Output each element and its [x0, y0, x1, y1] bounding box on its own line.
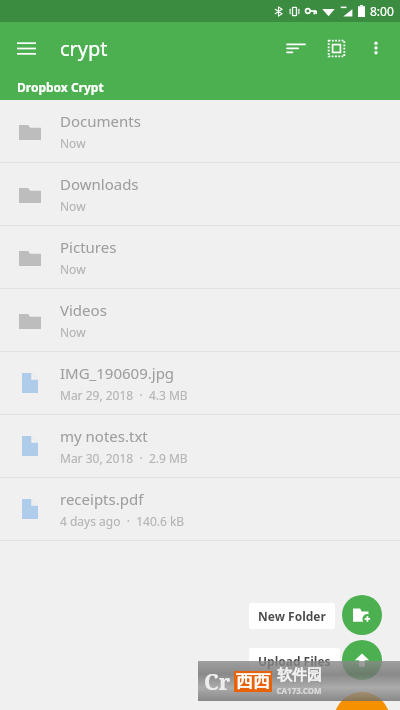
staticText: Now [60, 198, 86, 214]
button[interactable]: New folder [342, 595, 382, 635]
button[interactable]: New Folder [249, 603, 335, 629]
staticText: IMG_190609.jpg [60, 363, 175, 383]
button[interactable]: Pictures [0, 226, 400, 288]
staticText: Cr [204, 666, 231, 696]
staticText: Downloads [60, 174, 139, 194]
staticText: 4 days ago · 140.6 kB [60, 513, 185, 529]
staticText: Documents [60, 111, 141, 131]
staticText: Now [60, 261, 86, 277]
button[interactable]: Downloads [0, 163, 400, 225]
staticText: Now [60, 135, 86, 151]
button[interactable]: my notes.txt [0, 415, 400, 477]
staticText: my notes.txt [60, 426, 148, 446]
button[interactable]: IMG_190609.jpg [0, 352, 400, 414]
button[interactable]: More options [356, 28, 396, 68]
button[interactable]: Open navigation drawer [8, 30, 44, 66]
staticText: Now [60, 324, 86, 340]
staticText: Pictures [60, 237, 117, 257]
staticText: Mar 29, 2018 · 4.3 MB [60, 387, 188, 403]
button[interactable]: Select all [316, 28, 356, 68]
staticText: Videos [60, 300, 107, 320]
staticText: Dropbox Crypt [17, 79, 104, 95]
button[interactable]: Upload Files [249, 648, 340, 674]
button[interactable]: Videos [0, 289, 400, 351]
button[interactable]: Sort [276, 28, 316, 68]
staticText: 软件园 [277, 666, 322, 685]
staticText: Upload Files [258, 653, 331, 669]
staticText: receipts.pdf [60, 489, 144, 509]
staticText: CA173.COM [276, 685, 322, 696]
button[interactable]: Add [334, 692, 390, 710]
staticText: crypt [60, 35, 108, 62]
staticText: 8:00 [370, 3, 394, 19]
staticText: Mar 30, 2018 · 2.9 MB [60, 450, 188, 466]
button[interactable]: Upload files [342, 640, 382, 680]
button[interactable]: Documents [0, 100, 400, 162]
button[interactable]: receipts.pdf [0, 478, 400, 540]
staticText: New Folder [258, 608, 326, 624]
staticText: 西西 [236, 671, 270, 692]
